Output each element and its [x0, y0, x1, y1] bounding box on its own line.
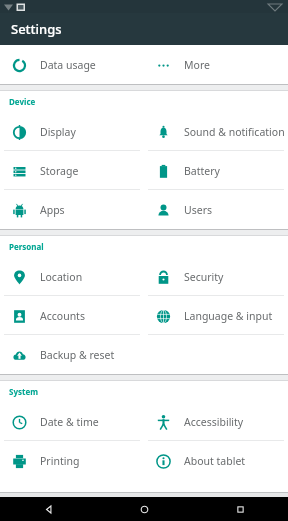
- button[interactable]: Sound & notification: [144, 112, 288, 151]
- button[interactable]: Language & input: [144, 296, 288, 335]
- button[interactable]: Recent apps: [192, 497, 288, 521]
- staticText: Sound & notification: [184, 125, 285, 139]
- staticText: Accounts: [40, 309, 85, 323]
- button[interactable]: Accounts: [0, 296, 144, 335]
- button[interactable]: Display: [0, 112, 144, 151]
- button[interactable]: Backup & reset: [0, 335, 144, 374]
- staticText: Device: [9, 96, 36, 107]
- staticText: Date & time: [40, 415, 99, 429]
- staticText: Data usage: [40, 58, 96, 72]
- staticText: About tablet: [184, 454, 246, 468]
- staticText: System: [9, 386, 39, 397]
- staticText: Language & input: [184, 309, 273, 323]
- button[interactable]: About tablet: [144, 441, 288, 480]
- button[interactable]: Date & time: [0, 402, 144, 441]
- staticText: Security: [184, 270, 224, 284]
- staticText: Storage: [40, 164, 79, 178]
- staticText: Backup & reset: [40, 348, 115, 362]
- staticText: Settings: [11, 20, 62, 38]
- staticText: Apps: [40, 203, 65, 217]
- button[interactable]: Security: [144, 257, 288, 296]
- button[interactable]: Home: [96, 497, 192, 521]
- staticText: Printing: [40, 454, 80, 468]
- staticText: Accessibility: [184, 415, 244, 429]
- staticText: Location: [40, 270, 83, 284]
- staticText: Display: [40, 125, 76, 139]
- button[interactable]: Back: [0, 497, 96, 521]
- button[interactable]: Users: [144, 190, 288, 229]
- button[interactable]: Accessibility: [144, 402, 288, 441]
- staticText: More: [184, 58, 210, 72]
- button[interactable]: Location: [0, 257, 144, 296]
- button[interactable]: Data usage: [0, 45, 144, 84]
- staticText: Personal: [9, 241, 44, 252]
- staticText: Battery: [184, 164, 220, 178]
- button[interactable]: Printing: [0, 441, 144, 480]
- button[interactable]: Storage: [0, 151, 144, 190]
- button[interactable]: Apps: [0, 190, 144, 229]
- button[interactable]: Battery: [144, 151, 288, 190]
- staticText: Users: [184, 203, 212, 217]
- button[interactable]: More: [144, 45, 288, 84]
